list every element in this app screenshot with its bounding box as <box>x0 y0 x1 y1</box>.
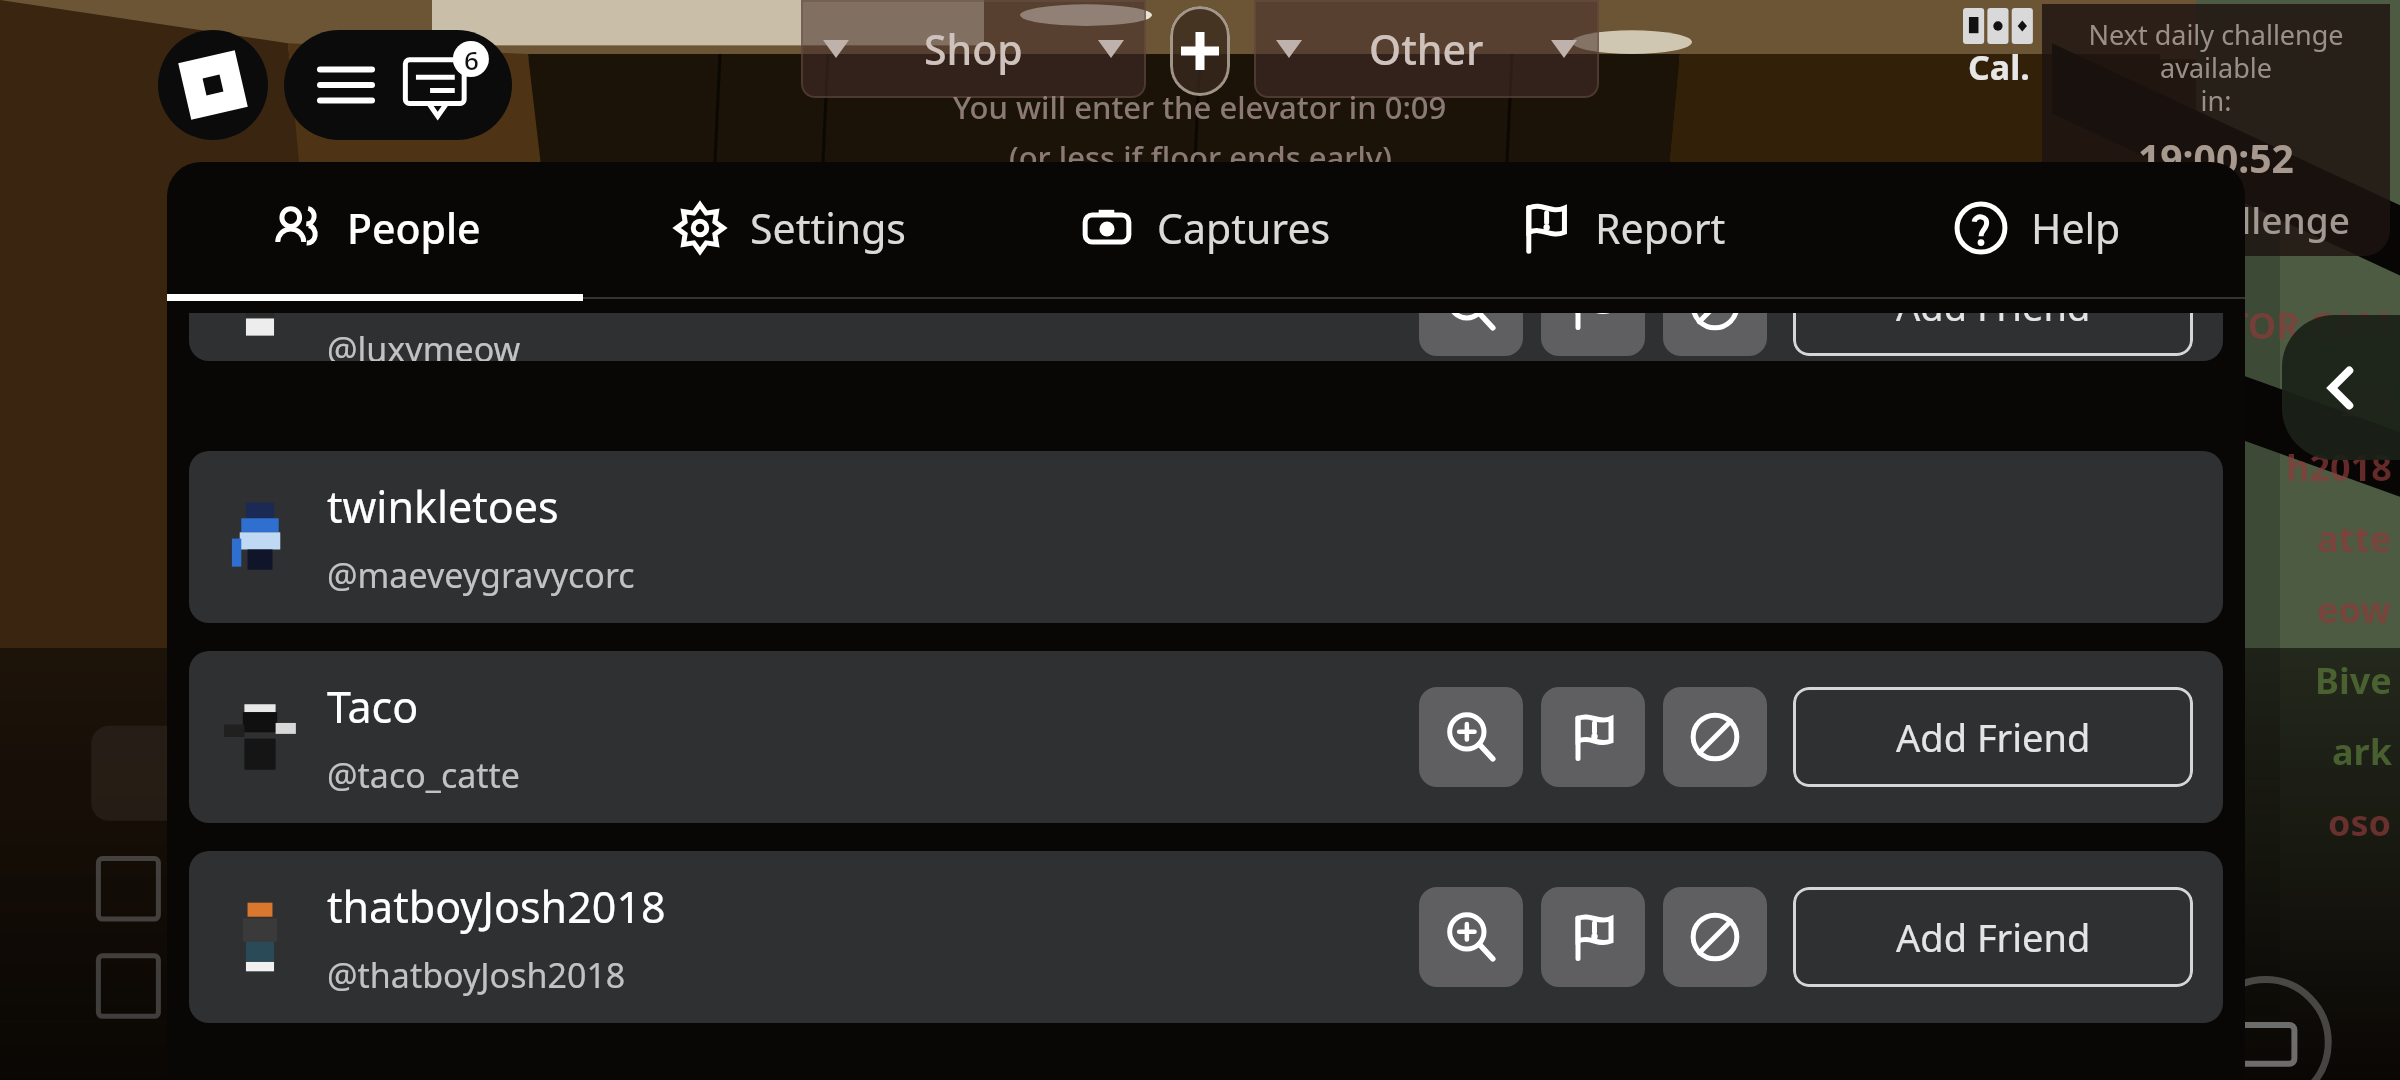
button[interactable]: Next daily challenge available in: <box>2042 4 2390 256</box>
staticText: _m <box>2342 372 2392 421</box>
staticText: Captures <box>1157 200 1331 256</box>
button[interactable]: twinkletoes <box>189 451 2223 623</box>
staticText: ELEVATOR CAM <box>2123 301 2392 350</box>
staticText: Settings <box>750 200 907 256</box>
button[interactable]: Chat <box>402 43 486 127</box>
staticText: 19:00:52 <box>2138 131 2294 184</box>
button[interactable]: Report player <box>1541 887 1645 987</box>
staticText: twinkletoes <box>327 477 559 536</box>
staticText: Bive <box>2315 656 2392 705</box>
staticText: Shop <box>924 21 1023 77</box>
staticText: You will enter the elevator in 0:09 <box>953 86 1447 128</box>
button[interactable]: Shop <box>801 0 1146 98</box>
button[interactable]: Report player <box>1541 687 1645 787</box>
staticText: Hide Challenge <box>2082 194 2350 244</box>
button[interactable]: Add Friend <box>1793 313 2193 356</box>
button[interactable]: Block player <box>1663 687 1767 787</box>
staticText: Add Friend <box>1896 911 2091 963</box>
button[interactable]: Help <box>1829 162 2245 294</box>
staticText: (or less if floor ends early) <box>1009 136 1392 178</box>
button[interactable]: Report <box>1413 162 1829 294</box>
button[interactable]: Report player <box>1541 313 1645 356</box>
button[interactable]: Inspect avatar <box>1419 687 1523 787</box>
staticText: ark <box>2332 727 2392 776</box>
button[interactable]: Inspect avatar <box>1419 313 1523 356</box>
staticText: Add Friend <box>1896 711 2091 763</box>
staticText: oso <box>2328 798 2392 847</box>
button[interactable]: Settings <box>582 162 997 294</box>
button[interactable]: luxymeow <box>189 313 2223 361</box>
staticText: Taco <box>327 677 419 736</box>
staticText: h2018 <box>2286 443 2392 492</box>
staticText: Other <box>1369 21 1484 77</box>
staticText: 6 <box>464 42 479 77</box>
staticText: People <box>347 200 481 256</box>
staticText: atte <box>2317 514 2392 563</box>
staticText: Next daily challenge available in: <box>2042 16 2390 119</box>
staticText: @luxymeow <box>327 326 521 361</box>
button[interactable]: Block player <box>1663 313 1767 356</box>
button[interactable]: thatboyJosh2018 <box>189 851 2223 1023</box>
button[interactable]: Roblox home <box>158 30 268 140</box>
staticText: @thatboyJosh2018 <box>327 952 626 998</box>
button[interactable]: Block player <box>1663 887 1767 987</box>
button[interactable]: Add Friend <box>1793 687 2193 787</box>
staticText: eow <box>2317 585 2392 634</box>
staticText: Report <box>1595 200 1726 256</box>
staticText: @taco_catte <box>327 752 521 798</box>
button[interactable]: Other <box>1254 0 1599 98</box>
button[interactable]: Inspect avatar <box>1419 887 1523 987</box>
button[interactable]: Taco <box>189 651 2223 823</box>
button[interactable]: Add <box>1170 6 1230 96</box>
staticText: Help <box>2031 200 2121 256</box>
staticText: Add Friend <box>1896 313 2091 332</box>
button[interactable]: Open sidebar <box>2282 315 2400 460</box>
button[interactable]: Menu <box>310 49 382 121</box>
button[interactable]: People <box>167 162 582 294</box>
staticText: @maeveygravycorc <box>327 552 635 598</box>
button[interactable]: Add Friend <box>1793 887 2193 987</box>
button[interactable]: Captures <box>997 162 1413 294</box>
staticText: Cal. <box>1968 44 2030 90</box>
staticText: thatboyJosh2018 <box>327 877 666 936</box>
